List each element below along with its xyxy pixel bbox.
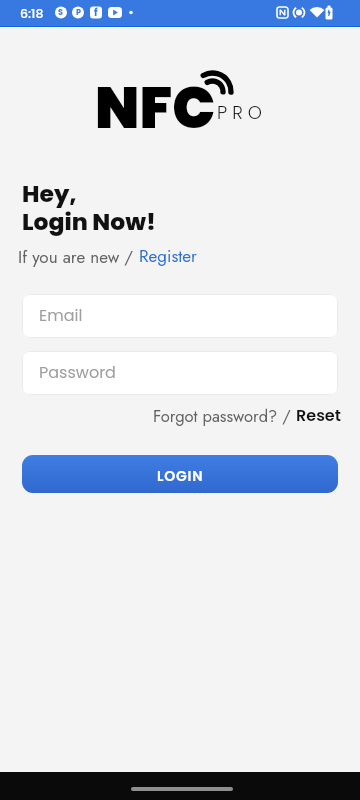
staticText: PRO — [217, 100, 267, 125]
button[interactable]: Email — [22, 294, 338, 338]
staticText: Email — [39, 304, 83, 326]
staticText: S — [58, 7, 63, 18]
button[interactable]: Register — [0, 0, 58, 25]
staticText: If you are new / — [18, 245, 134, 270]
staticText: Forgot password? / — [153, 404, 291, 428]
staticText: Login Now! — [22, 205, 156, 238]
staticText: f — [94, 5, 98, 19]
staticText: P — [76, 7, 81, 18]
staticText: LOGIN — [157, 466, 204, 486]
staticText: 6:18 — [20, 5, 44, 22]
staticText: NFC — [95, 68, 216, 148]
staticText: Hey, — [22, 177, 77, 210]
button[interactable]: LOGIN — [22, 455, 338, 493]
button[interactable]: Password — [22, 351, 338, 395]
button[interactable]: Reset — [0, 0, 45, 22]
staticText: Password — [39, 361, 116, 383]
